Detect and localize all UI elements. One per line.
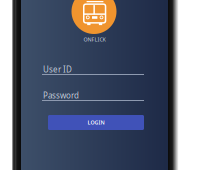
staticText: User ID <box>43 64 72 75</box>
staticText: ONFLICK <box>83 36 105 43</box>
button[interactable]: LOGIN <box>48 115 144 130</box>
staticText: LOGIN <box>87 119 104 126</box>
staticText: Password <box>43 90 79 101</box>
